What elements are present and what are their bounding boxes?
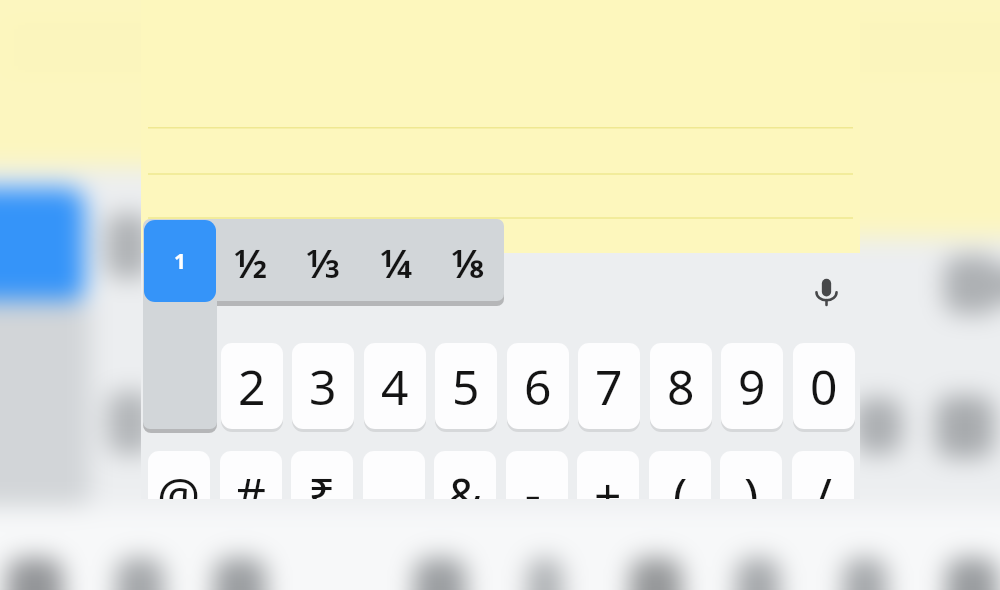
button[interactable]: 8 [650,343,712,429]
button[interactable]: ½ [215,221,287,303]
button[interactable]: 4 [364,343,426,429]
staticText: ₹ [308,462,336,499]
button[interactable]: ⅓ [287,221,359,303]
staticText: 9 [738,354,766,419]
button[interactable]: 6 [507,343,569,429]
staticText: 2 [238,354,266,419]
button[interactable]: ₹ [291,451,353,499]
staticText: + [594,462,622,499]
staticText: ( [673,462,688,499]
staticText: ⅓ [306,235,341,289]
staticText [531,462,544,499]
button[interactable]: Voice input [802,268,851,317]
button[interactable]: / [792,451,854,499]
staticText: 0 [810,354,838,419]
button[interactable] [506,451,568,499]
button[interactable]: 0 [793,343,855,429]
staticText: ½ [234,235,268,289]
staticText: @ [157,462,201,499]
staticText: ¼ [380,235,412,289]
staticText: & [447,462,483,499]
button[interactable]: ( [649,451,711,499]
button[interactable]: ) [720,451,782,499]
staticText: # [235,462,267,499]
button[interactable]: 2 [221,343,283,429]
button[interactable]: 1 [144,220,216,302]
button[interactable]: & [434,451,496,499]
staticText: 1 [174,247,187,276]
staticText: ⅛ [451,235,486,289]
staticText: ) [744,462,759,499]
staticText: 6 [524,354,552,419]
staticText: 7 [595,354,623,419]
staticText: 4 [381,354,409,419]
staticText: 5 [452,354,480,419]
button[interactable]: 3 [292,343,354,429]
staticText: / [814,462,832,499]
button[interactable]: @ [148,451,210,499]
staticText: 8 [667,354,695,419]
button[interactable]: + [577,451,639,499]
button[interactable]: ¼ [360,221,432,303]
staticText: 3 [309,354,337,419]
button[interactable]: 5 [435,343,497,429]
button[interactable]: # [220,451,282,499]
button[interactable]: 7 [578,343,640,429]
button[interactable]: ⅛ [432,221,504,303]
button[interactable]: 9 [721,343,783,429]
